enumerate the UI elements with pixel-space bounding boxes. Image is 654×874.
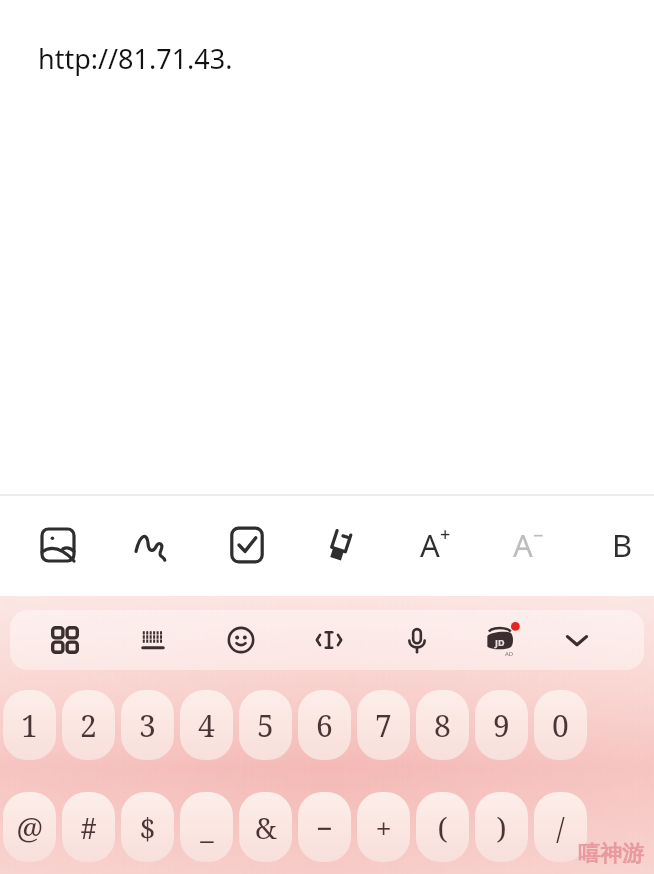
- button[interactable]: 6: [298, 690, 351, 760]
- button[interactable]: /: [534, 792, 587, 862]
- staticText: AD: [505, 650, 514, 658]
- button[interactable]: Draw: [125, 518, 179, 572]
- button[interactable]: 0: [534, 690, 587, 760]
- staticText: A: [420, 524, 440, 566]
- button[interactable]: Keyboard layout: [126, 613, 180, 667]
- staticText: 嘻神游: [578, 840, 644, 868]
- staticText: @: [16, 808, 43, 847]
- staticText: +: [440, 522, 451, 547]
- button[interactable]: 2: [62, 690, 115, 760]
- button[interactable]: 7: [357, 690, 410, 760]
- button[interactable]: Checklist: [220, 518, 274, 572]
- button[interactable]: (: [416, 792, 469, 862]
- staticText: +: [375, 808, 392, 847]
- staticText: −: [316, 808, 333, 847]
- staticText: 1: [21, 705, 38, 746]
- button[interactable]: #: [62, 792, 115, 862]
- staticText: ): [496, 808, 507, 847]
- button[interactable]: 1: [3, 690, 56, 760]
- staticText: 8: [434, 705, 451, 746]
- button[interactable]: Ad: [474, 613, 528, 667]
- button[interactable]: Emoji: [214, 613, 268, 667]
- button[interactable]: &: [239, 792, 292, 862]
- button[interactable]: −: [298, 792, 351, 862]
- staticText: 3: [139, 705, 156, 746]
- button[interactable]: 9: [475, 690, 528, 760]
- staticText: (: [437, 808, 448, 847]
- button[interactable]: 4: [180, 690, 233, 760]
- staticText: 4: [198, 705, 215, 746]
- button[interactable]: _: [180, 792, 233, 862]
- staticText: B: [612, 524, 633, 566]
- button[interactable]: 3: [121, 690, 174, 760]
- button[interactable]: Insert image: [31, 518, 85, 572]
- staticText: 9: [493, 705, 510, 746]
- staticText: http://81.71.43.: [38, 40, 233, 77]
- staticText: #: [80, 808, 97, 847]
- staticText: 7: [375, 705, 392, 746]
- staticText: /: [556, 808, 565, 847]
- button[interactable]: Move cursor: [302, 613, 356, 667]
- staticText: 2: [80, 705, 97, 746]
- staticText: &: [255, 808, 277, 847]
- button[interactable]: 8: [416, 690, 469, 760]
- button[interactable]: Bold: [595, 518, 649, 572]
- button[interactable]: Highlighter: [313, 518, 367, 572]
- button[interactable]: Decrease text size: [501, 518, 555, 572]
- button[interactable]: ): [475, 792, 528, 862]
- button[interactable]: @: [3, 792, 56, 862]
- button[interactable]: +: [357, 792, 410, 862]
- button[interactable]: Voice input: [390, 613, 444, 667]
- staticText: $: [139, 808, 156, 847]
- button[interactable]: 5: [239, 690, 292, 760]
- staticText: A: [513, 524, 533, 566]
- button[interactable]: Increase text size: [408, 518, 462, 572]
- staticText: 6: [316, 705, 333, 746]
- button[interactable]: Hide keyboard: [550, 613, 604, 667]
- button[interactable]: $: [121, 792, 174, 862]
- staticText: _: [200, 808, 214, 847]
- staticText: 0: [552, 705, 569, 746]
- button[interactable]: Menu: [38, 613, 92, 667]
- staticText: 5: [257, 705, 274, 746]
- staticText: JD: [495, 636, 505, 648]
- staticText: −: [533, 523, 544, 548]
